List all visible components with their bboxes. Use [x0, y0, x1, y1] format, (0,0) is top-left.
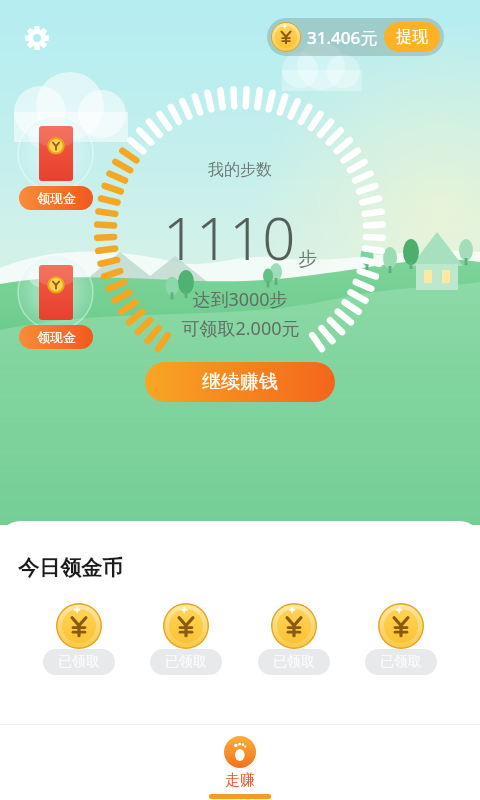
staticText: 可领取2.000元 [181, 316, 300, 341]
button[interactable]: 已领取 [253, 603, 335, 675]
staticText: 已领取 [380, 653, 422, 671]
button[interactable]: Settings [18, 19, 56, 57]
staticText: 已领取 [165, 653, 207, 671]
staticText: 提现 [396, 27, 428, 47]
button[interactable]: 31.406元 [267, 18, 444, 56]
staticText: 走赚 [225, 771, 255, 790]
staticText: 达到3000步 [192, 287, 288, 312]
staticText: 继续赚钱 [202, 370, 278, 394]
staticText: 31.406元 [307, 26, 378, 49]
button[interactable]: 领现金 [17, 115, 94, 210]
staticText: 今日领金币 [18, 555, 123, 581]
button[interactable]: 提现 [384, 22, 440, 52]
staticText: 步 [298, 247, 317, 271]
staticText: 1110 [163, 198, 296, 277]
button[interactable]: 走赚 [0, 725, 480, 800]
button[interactable]: 继续赚钱 [145, 362, 335, 402]
button[interactable]: 已领取 [360, 603, 442, 675]
button[interactable]: 领现金 [17, 254, 94, 349]
staticText: 我的步数 [208, 160, 272, 180]
staticText: 领现金 [37, 329, 76, 345]
button[interactable]: 已领取 [145, 603, 227, 675]
staticText: 领现金 [37, 190, 76, 206]
staticText: 已领取 [273, 653, 315, 671]
staticText: 已领取 [58, 653, 100, 671]
button[interactable]: 已领取 [38, 603, 120, 675]
